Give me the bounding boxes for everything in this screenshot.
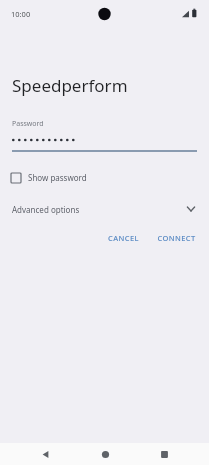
- button[interactable]: Advanced options: [0, 198, 209, 220]
- staticText: CONNECT: [157, 233, 196, 243]
- button[interactable]: Password: [0, 119, 209, 152]
- button[interactable]: Show password: [0, 168, 209, 187]
- staticText: Advanced options: [12, 204, 80, 215]
- staticText: Speedperform: [12, 74, 128, 97]
- button[interactable]: Back: [31, 443, 59, 465]
- staticText: Show password: [28, 172, 87, 183]
- button[interactable]: Home: [91, 443, 119, 465]
- staticText: Password: [12, 119, 44, 129]
- staticText: CANCEL: [108, 233, 139, 243]
- button[interactable]: CANCEL: [103, 229, 144, 247]
- staticText: 10:00: [11, 9, 31, 19]
- other: Expand advanced options: [185, 203, 197, 215]
- button[interactable]: Recent apps: [150, 443, 178, 465]
- button[interactable]: CONNECT: [152, 229, 201, 247]
